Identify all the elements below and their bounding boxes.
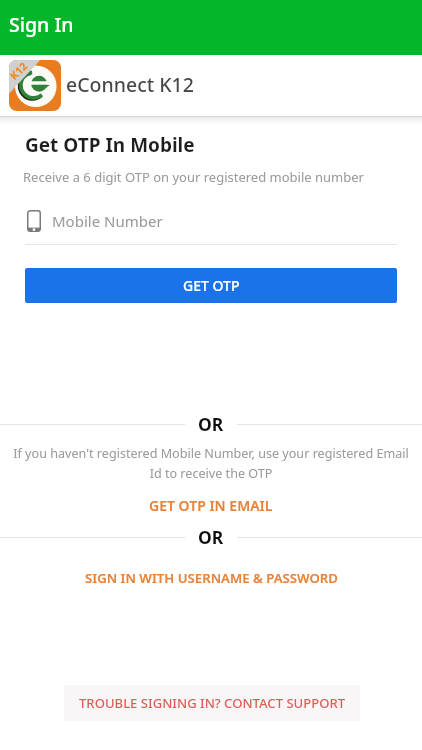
button[interactable]: GET OTP [25,268,397,303]
button[interactable]: GET OTP IN EMAIL [0,492,422,518]
staticText: OR [198,412,224,436]
staticText: eConnect K12 [66,71,194,98]
button[interactable]: SIGN IN WITH USERNAME & PASSWORD [0,566,422,590]
other: Mobile number [27,210,41,232]
button[interactable]: Mobile number [25,206,397,246]
button[interactable]: K12 [0,55,422,115]
staticText: If you haven't registered Mobile Number,… [0,445,422,482]
staticText: K12 [7,59,30,83]
staticText: TROUBLE SIGNING IN? CONTACT SUPPORT [79,694,346,712]
staticText: GET OTP IN EMAIL [149,496,273,515]
staticText: SIGN IN WITH USERNAME & PASSWORD [85,569,338,587]
staticText: Mobile Number [52,211,163,231]
staticText: Receive a 6 digit OTP on your registered… [23,168,364,186]
staticText: Get OTP In Mobile [25,132,195,158]
staticText: Sign In [9,11,74,38]
staticText: OR [198,525,224,549]
button[interactable]: TROUBLE SIGNING IN? CONTACT SUPPORT [64,685,360,721]
staticText: GET OTP [183,276,240,295]
